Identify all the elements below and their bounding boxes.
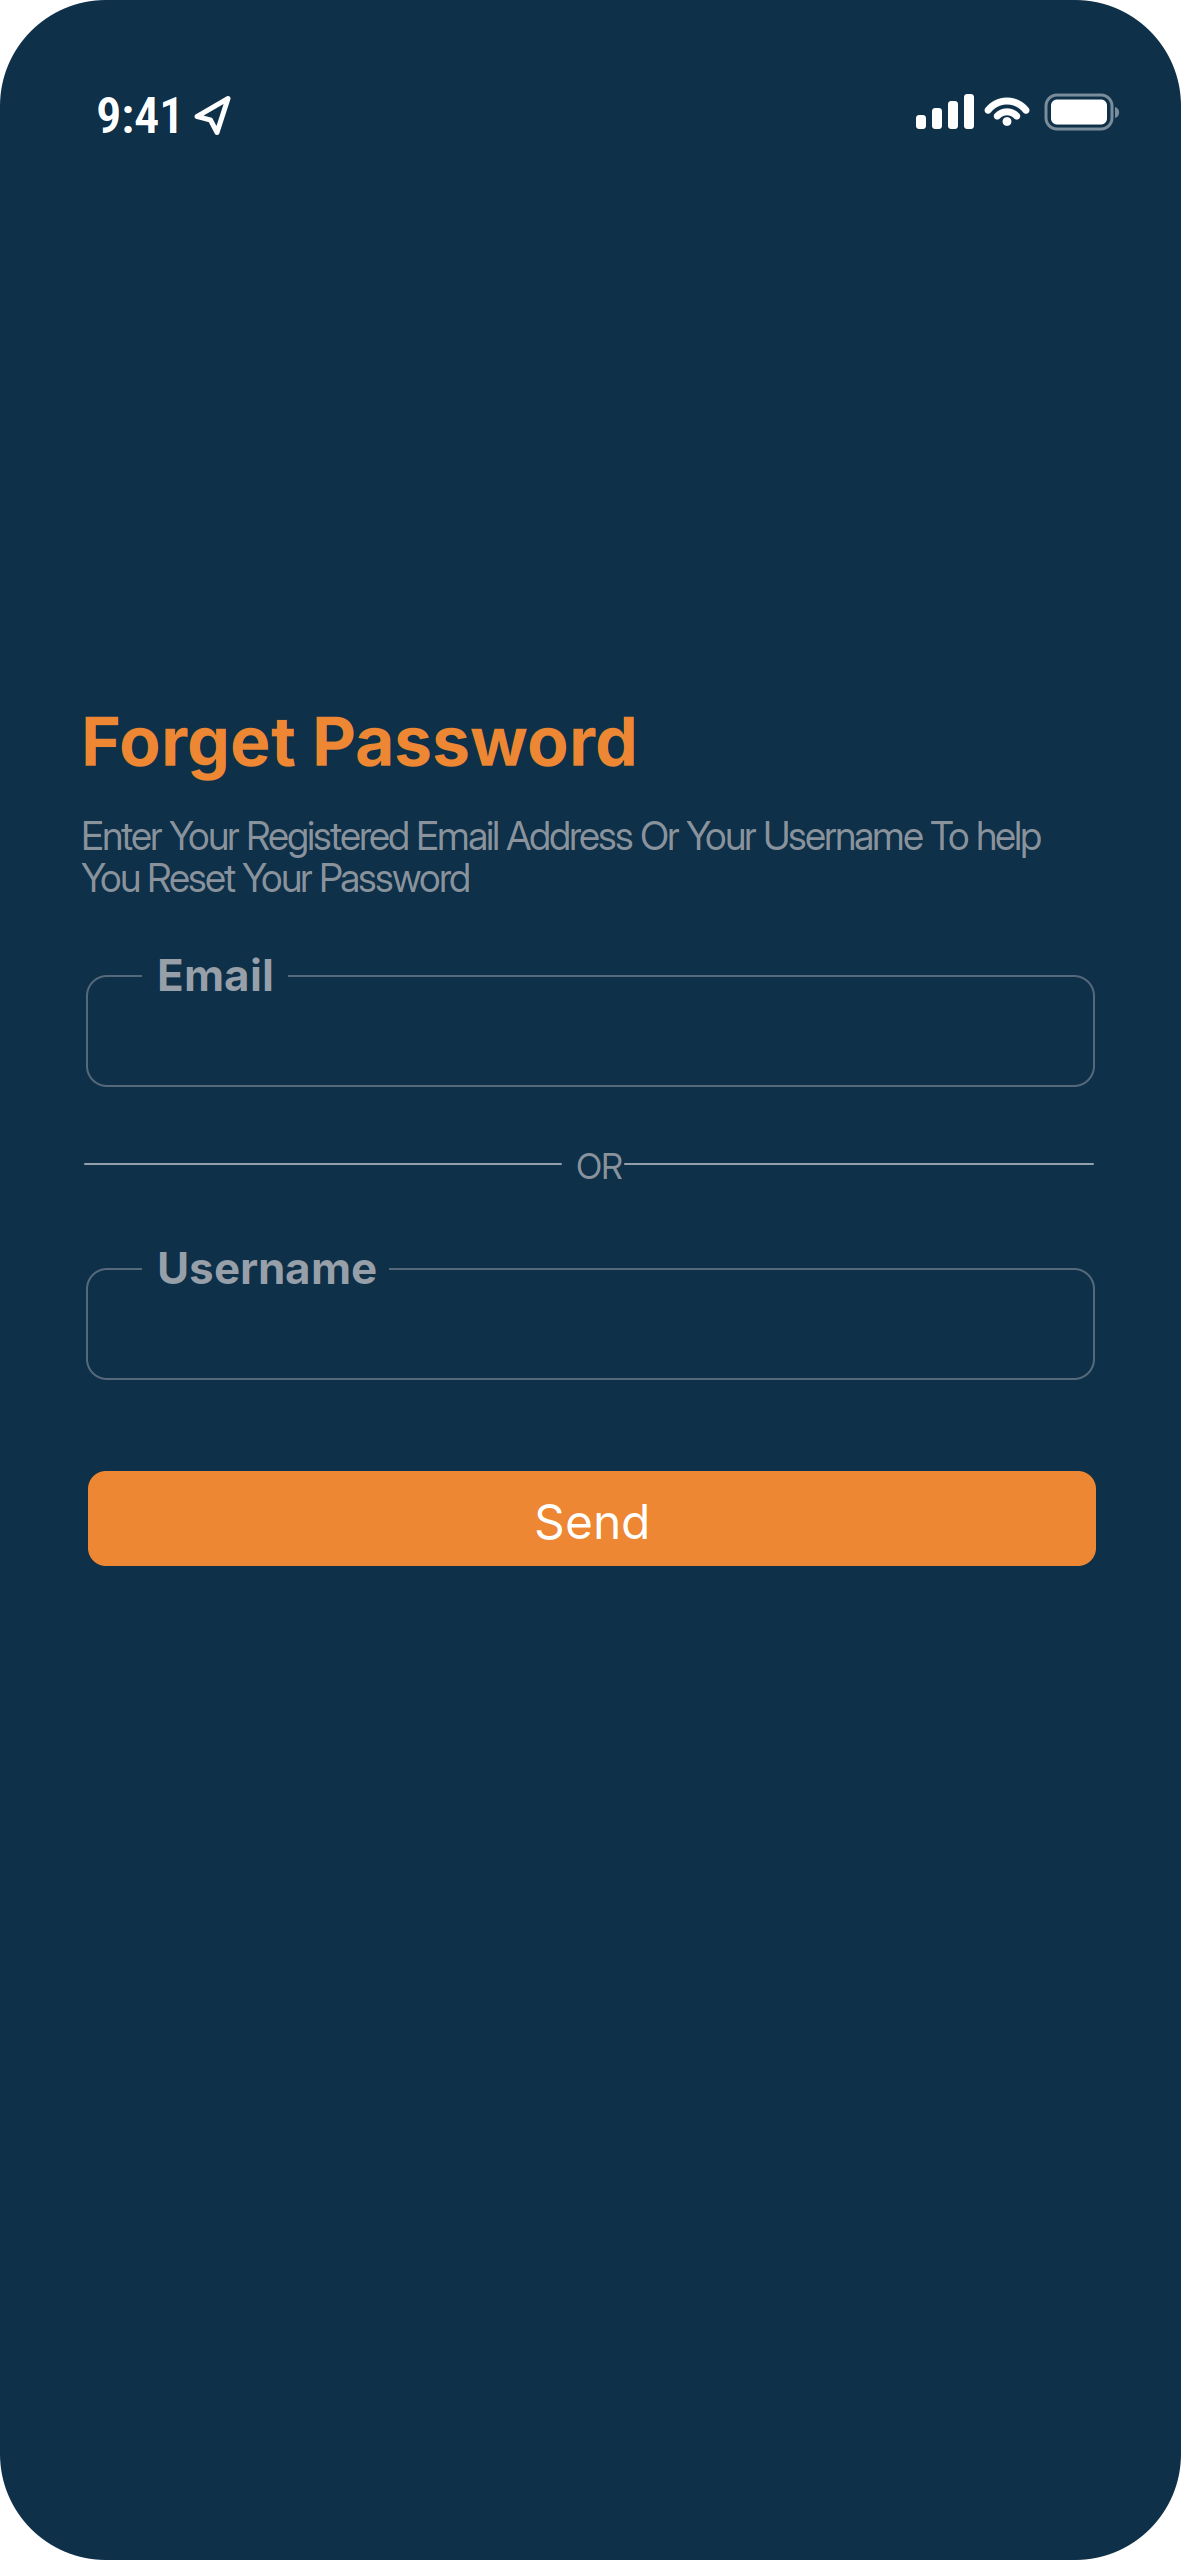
staticText: Username	[157, 1242, 377, 1294]
button[interactable]: Email	[87, 949, 1094, 1086]
button[interactable]: Send	[88, 1471, 1096, 1566]
staticText: You Reset Your Password	[81, 855, 471, 901]
staticText: Send	[534, 1493, 650, 1550]
staticText: 9:41	[96, 86, 184, 145]
staticText: OR	[576, 1146, 623, 1187]
staticText: Enter Your Registered Email Address Or Y…	[81, 813, 1042, 859]
staticText: Email	[157, 949, 274, 1001]
staticText: Forget Password	[81, 701, 638, 781]
button[interactable]: Username	[87, 1242, 1094, 1379]
